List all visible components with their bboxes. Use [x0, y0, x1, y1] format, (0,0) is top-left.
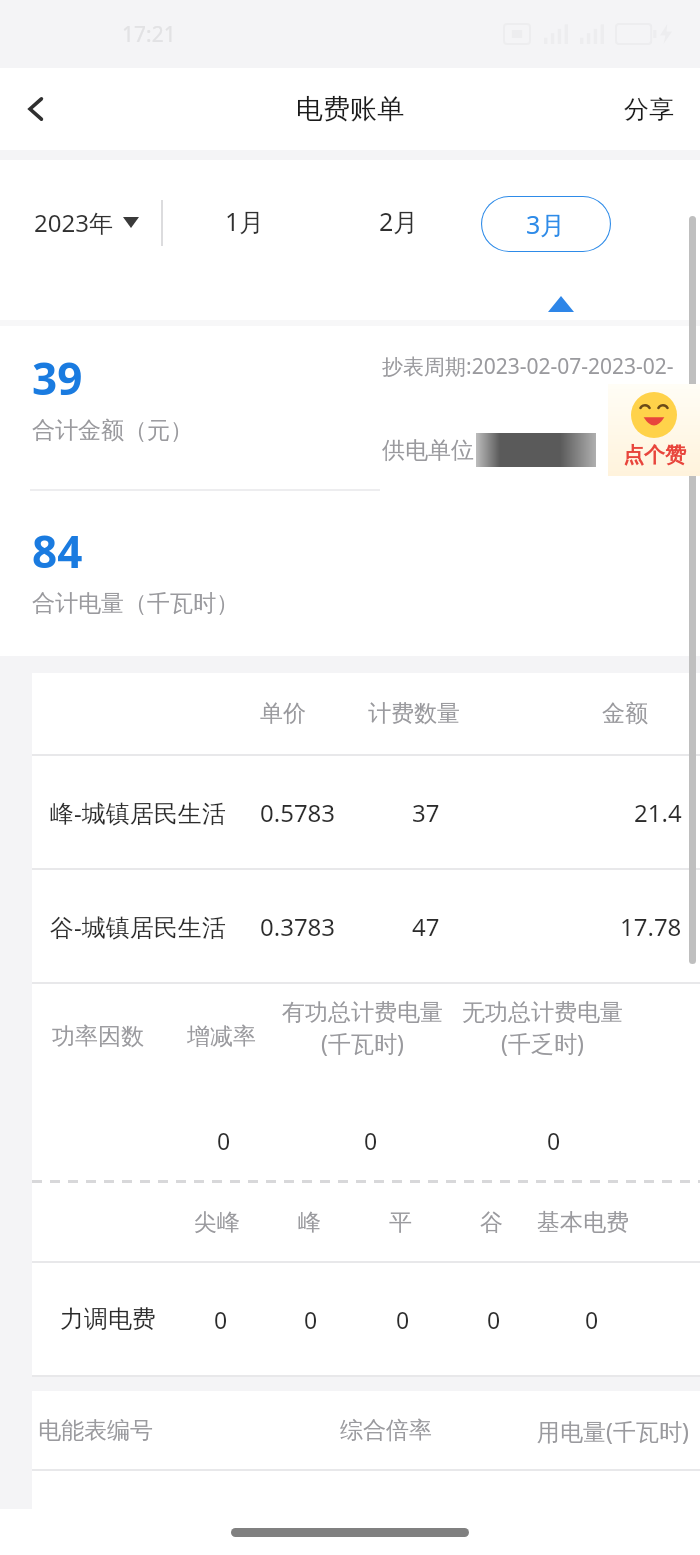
staticText: 平	[389, 1208, 412, 1237]
staticText: 用电量(千瓦时)	[537, 1415, 689, 1446]
button[interactable]: 点个赞	[608, 384, 700, 476]
button[interactable]: 2月	[353, 196, 445, 246]
staticText: 电费账单	[296, 92, 404, 126]
staticText: 谷-城镇居民生活	[50, 910, 226, 943]
staticText: 基本电费	[537, 1208, 629, 1237]
staticText: 1月	[225, 204, 265, 238]
staticText: 无功总计费电量	[462, 998, 623, 1027]
staticText: 3月	[526, 207, 566, 241]
staticText: 功率因数	[52, 1022, 144, 1051]
staticText: 峰-城镇居民生活	[50, 796, 226, 829]
button[interactable]: 3月	[481, 196, 611, 252]
staticText: 21.4	[634, 796, 682, 829]
staticText: 抄表周期:2023-02-07-2023-02-	[382, 352, 674, 381]
button[interactable]: 分享	[616, 84, 682, 135]
staticText: 尖峰	[194, 1208, 240, 1237]
button[interactable]: 1月	[199, 196, 291, 246]
staticText: 计费数量	[368, 699, 460, 728]
staticText: 39	[32, 348, 83, 408]
staticText: 0.3783	[260, 910, 336, 943]
staticText: 17:21	[122, 20, 176, 49]
staticText: 0	[214, 1304, 228, 1335]
staticText: 0.5783	[260, 796, 336, 829]
staticText: 0	[217, 1125, 231, 1156]
staticText: 84	[32, 521, 83, 581]
staticText: 电能表编号	[38, 1416, 153, 1445]
button[interactable]: 2023年	[34, 196, 139, 249]
staticText: (千乏时)	[501, 1027, 584, 1058]
staticText: 合计金额（元）	[32, 416, 193, 445]
staticText: 分享	[624, 94, 674, 125]
staticText: 峰	[298, 1208, 321, 1237]
staticText: 47	[412, 910, 440, 943]
staticText: 谷	[480, 1208, 503, 1237]
staticText: 单价	[260, 699, 306, 728]
staticText: 2023年	[34, 206, 113, 239]
staticText: 0	[364, 1125, 378, 1156]
staticText: 0	[396, 1304, 410, 1335]
staticText: 综合倍率	[340, 1416, 432, 1445]
staticText: 0	[585, 1304, 599, 1335]
staticText: 力调电费	[60, 1304, 156, 1334]
staticText: 0	[487, 1304, 501, 1335]
staticText: 0	[304, 1304, 318, 1335]
staticText: 金额	[602, 699, 648, 728]
staticText: 2月	[379, 204, 419, 238]
staticText: 点个赞	[623, 442, 686, 468]
button[interactable]: Back	[8, 81, 64, 137]
staticText: 供电单位	[382, 436, 474, 465]
staticText: 17.78	[620, 910, 682, 943]
staticText: (千瓦时)	[321, 1027, 404, 1058]
staticText: 37	[412, 796, 440, 829]
staticText: 增减率	[187, 1022, 256, 1051]
staticText: 有功总计费电量	[282, 998, 443, 1027]
staticText: 0	[547, 1125, 561, 1156]
staticText: 合计电量（千瓦时）	[32, 589, 239, 618]
